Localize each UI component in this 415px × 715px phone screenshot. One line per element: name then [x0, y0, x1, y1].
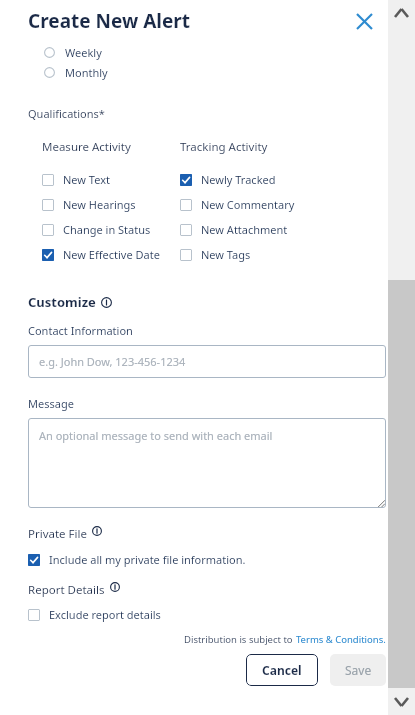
staticText: e.g. John Dow, 123-456-1234 — [39, 354, 186, 369]
staticText: Cancel — [262, 662, 302, 678]
staticText: New Commentary — [201, 197, 295, 212]
button[interactable]: Monthly — [44, 62, 108, 82]
staticText: Weekly — [65, 45, 102, 60]
staticText: New Text — [63, 172, 110, 187]
staticText: Measure Activity — [42, 139, 131, 155]
staticText: New Effective Date — [63, 247, 160, 262]
button[interactable]: New Hearings — [42, 192, 136, 217]
staticText: New Attachment — [201, 222, 288, 237]
button[interactable]: Newly Tracked — [180, 167, 276, 192]
staticText: Tracking Activity — [180, 139, 268, 155]
staticText: Qualifications* — [28, 106, 105, 121]
button[interactable]: Scroll down — [388, 688, 415, 715]
button[interactable]: Save — [330, 654, 386, 686]
staticText: Save — [345, 662, 372, 678]
button[interactable]: Scroll up — [388, 0, 415, 26]
button[interactable]: Include all my private file information. — [28, 547, 246, 572]
button[interactable]: An optional message to send with each em… — [28, 418, 386, 508]
button[interactable]: Close — [350, 7, 378, 35]
staticText: Private File — [28, 526, 87, 542]
button[interactable]: Change in Status — [42, 217, 151, 242]
staticText: Customize — [28, 293, 96, 311]
staticText: Create New Alert — [28, 8, 191, 34]
staticText: Change in Status — [63, 222, 151, 237]
staticText: An optional message to send with each em… — [39, 428, 273, 443]
staticText: Report Details — [28, 582, 105, 598]
button[interactable]: Terms & Conditions. — [296, 633, 386, 646]
staticText: New Hearings — [63, 197, 136, 212]
staticText: Exclude report details — [49, 607, 161, 622]
button[interactable]: New Text — [42, 167, 110, 192]
button[interactable]: New Effective Date — [42, 242, 160, 267]
staticText: Include all my private file information. — [49, 552, 246, 567]
button[interactable]: Exclude report details — [28, 602, 161, 627]
button[interactable]: New Tags — [180, 242, 251, 267]
staticText: Distribution is subject to — [184, 633, 296, 646]
staticText: Monthly — [65, 65, 108, 80]
button[interactable]: Cancel — [246, 654, 318, 686]
staticText: Newly Tracked — [201, 172, 276, 187]
button[interactable]: e.g. John Dow, 123-456-1234 — [28, 345, 386, 378]
staticText: Message — [28, 396, 74, 411]
staticText: Contact Information — [28, 323, 133, 338]
staticText: New Tags — [201, 247, 251, 262]
button[interactable]: New Attachment — [180, 217, 288, 242]
button[interactable]: New Commentary — [180, 192, 295, 217]
button[interactable]: Weekly — [44, 42, 102, 62]
